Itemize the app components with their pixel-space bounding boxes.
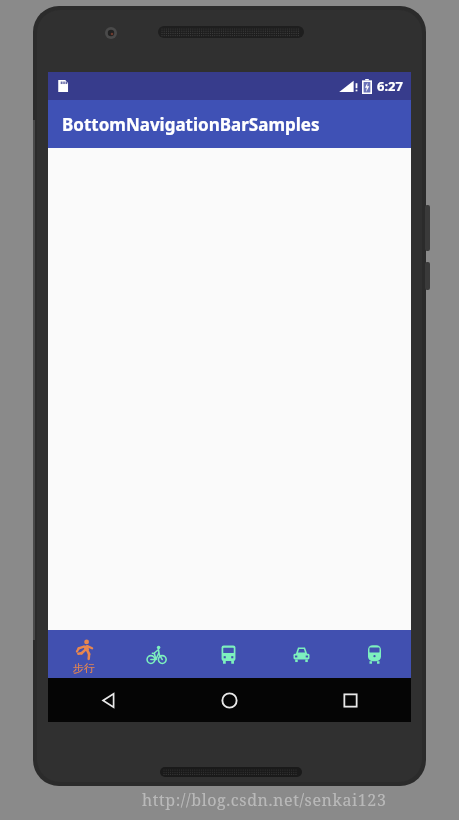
button[interactable]: Walking xyxy=(48,630,120,678)
staticText: 步行 xyxy=(73,661,95,675)
button[interactable]: Back xyxy=(48,678,169,722)
button[interactable]: Transport option xyxy=(338,630,411,678)
staticText: http://blog.csdn.net/senkai123 xyxy=(142,789,387,811)
staticText: 6:27 xyxy=(377,77,403,95)
button[interactable]: Transport option xyxy=(265,630,338,678)
button[interactable]: Transport option xyxy=(120,630,192,678)
button[interactable]: Recent apps xyxy=(290,678,411,722)
button[interactable]: Home xyxy=(169,678,290,722)
staticText: BottomNavigationBarSamples xyxy=(62,113,320,136)
button[interactable]: Transport option xyxy=(192,630,265,678)
